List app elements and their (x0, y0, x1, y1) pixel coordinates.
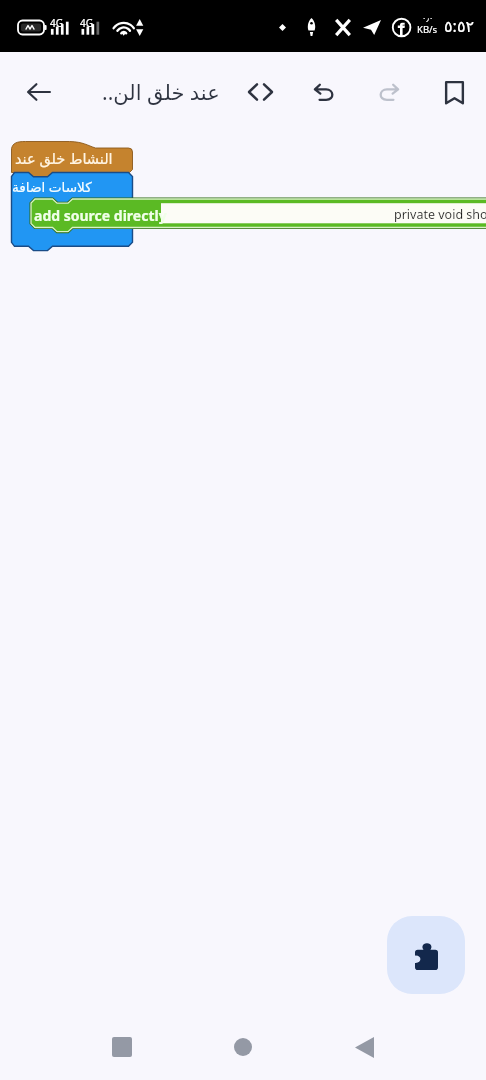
staticText: private void show (394, 206, 486, 223)
button[interactable]: Recent apps (92, 1021, 152, 1073)
staticText: النشاط خلق عند (15, 148, 113, 168)
button[interactable]: Undo (300, 68, 348, 116)
button[interactable]: View code (236, 68, 284, 116)
staticText: 4G (50, 16, 63, 30)
staticText: KB/s (417, 23, 438, 36)
button[interactable]: Bookmark (430, 68, 478, 116)
staticText: ‫عند خلق الن..‬ (102, 78, 220, 107)
staticText: ‪٠٫٠‬ (422, 12, 434, 23)
button[interactable]: Add extension (387, 916, 465, 994)
button[interactable]: Back (334, 1021, 394, 1073)
staticText: ‪٥:٥٢‬ (444, 15, 475, 37)
button[interactable]: Redo (365, 68, 413, 116)
staticText: add source directly (34, 206, 167, 225)
button[interactable]: Home (213, 1021, 273, 1073)
staticText: كلاسات اضافة (12, 177, 92, 196)
button[interactable]: Back (14, 68, 63, 116)
button[interactable]: ‫عند خلق الن..‬ (74, 73, 220, 111)
staticText: 4G (80, 16, 93, 30)
